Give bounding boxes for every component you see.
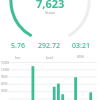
staticText: 12000 [1, 68, 9, 72]
staticText: 6000 [1, 82, 8, 86]
staticText: 5.76 [11, 41, 25, 51]
staticText: 15000 [1, 61, 9, 65]
staticText: 7,623 [36, 0, 65, 11]
button[interactable]: 292.72 [33, 41, 65, 56]
button[interactable]: 03:21 [65, 41, 97, 56]
staticText: km [15, 55, 21, 60]
staticText: kcal [46, 55, 53, 60]
staticText: 03:21 [72, 41, 90, 51]
staticText: 292.72 [38, 41, 60, 51]
staticText: 时间 [77, 55, 85, 60]
button[interactable]: 5.76 [2, 41, 33, 56]
staticText: 9000 [1, 75, 8, 79]
staticText: 3000 [1, 89, 8, 93]
staticText: Steps [45, 10, 56, 15]
